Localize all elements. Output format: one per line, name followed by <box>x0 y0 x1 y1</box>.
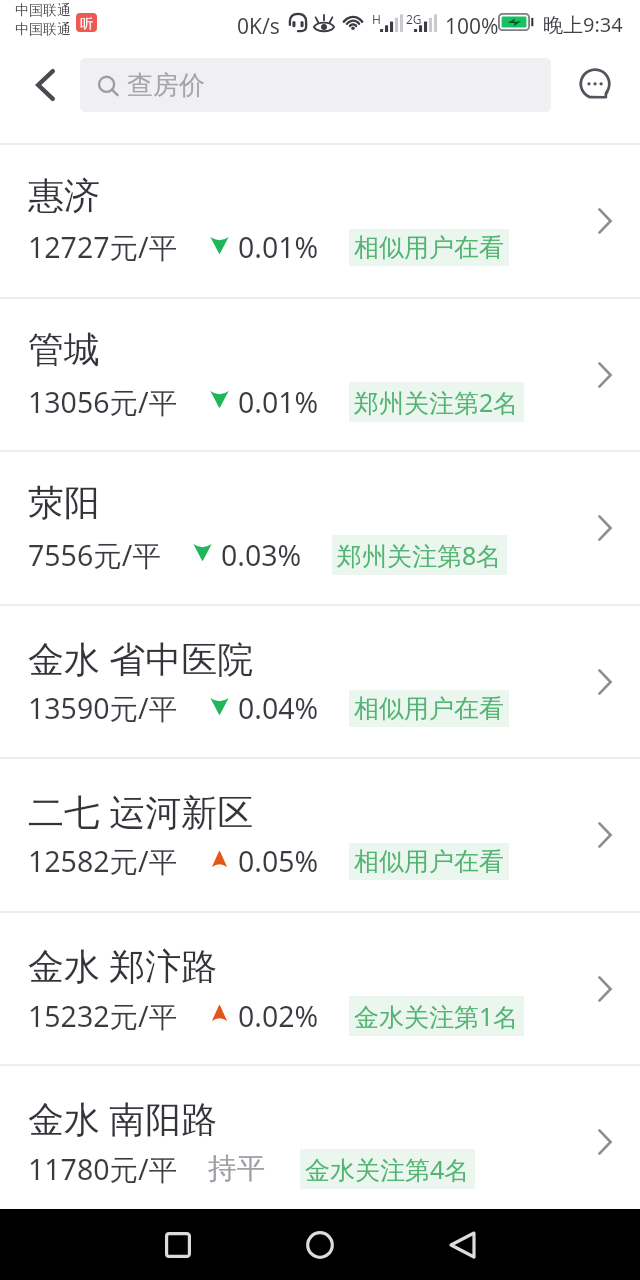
button[interactable]: 查房价 <box>80 58 551 112</box>
staticText: 7556元/平 <box>28 536 161 575</box>
button[interactable]: 金水 郑汴路 <box>0 913 640 1065</box>
staticText: 13056元/平 <box>28 383 178 422</box>
staticText: 金水 南阳路 <box>28 1094 218 1143</box>
staticText: 荥阳 <box>28 480 100 525</box>
button[interactable]: 惠济 <box>0 145 640 297</box>
staticText: 惠济 <box>28 173 100 218</box>
button[interactable]: Recents <box>135 1209 221 1280</box>
button[interactable]: 荥阳 <box>0 452 640 604</box>
staticText: 金水关注第4名 <box>305 1152 470 1186</box>
staticText: 15232元/平 <box>28 997 178 1036</box>
staticText: 查房价 <box>127 69 205 102</box>
staticText: 相似用户在看 <box>354 232 504 263</box>
staticText: 0.01% <box>238 228 319 267</box>
button[interactable]: Home <box>277 1209 363 1280</box>
staticText: 0.01% <box>238 383 319 422</box>
staticText: 金水关注第1名 <box>354 999 519 1033</box>
staticText: 金水 郑汴路 <box>28 941 218 990</box>
staticText: 二七 运河新区 <box>28 787 254 836</box>
staticText: 听 <box>80 15 93 31</box>
staticText: 郑州关注第8名 <box>337 538 502 572</box>
staticText: 12582元/平 <box>28 842 178 881</box>
staticText: 13590元/平 <box>28 689 178 728</box>
staticText: 0.04% <box>238 689 319 728</box>
button[interactable]: 金水 南阳路 <box>0 1066 640 1218</box>
staticText: H <box>372 11 381 27</box>
staticText: 中国联通 <box>15 2 71 20</box>
staticText: 0.03% <box>221 536 302 575</box>
staticText: 12727元/平 <box>28 228 178 267</box>
staticText: 100% <box>445 12 499 41</box>
staticText: 持平 <box>208 1151 265 1187</box>
staticText: 0.05% <box>238 842 319 881</box>
staticText: 管城 <box>28 327 100 372</box>
button[interactable]: Back <box>5 58 85 112</box>
button[interactable]: 二七 运河新区 <box>0 759 640 911</box>
staticText: 2G <box>406 11 422 27</box>
button[interactable]: 管城 <box>0 299 640 451</box>
staticText: 相似用户在看 <box>354 693 504 724</box>
staticText: 0K/s <box>237 12 280 41</box>
staticText: 金水 省中医院 <box>28 634 254 683</box>
staticText: 中国联通 <box>15 21 71 39</box>
staticText: 11780元/平 <box>28 1150 178 1189</box>
staticText: 相似用户在看 <box>354 846 504 877</box>
staticText: 郑州关注第2名 <box>354 385 519 419</box>
staticText: 晚上9:34 <box>543 11 623 38</box>
button[interactable]: Back <box>419 1209 505 1280</box>
staticText: 0.02% <box>238 997 319 1036</box>
button[interactable]: 金水 省中医院 <box>0 606 640 758</box>
button[interactable]: More options <box>551 58 640 112</box>
